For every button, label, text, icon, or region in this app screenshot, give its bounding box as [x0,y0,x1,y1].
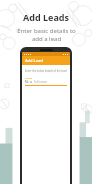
staticText: Enter the below details of the lead [25,69,67,73]
staticText: Full name [34,80,47,84]
staticText: Add Lead [25,58,43,63]
staticText: Add Leads [23,11,69,23]
staticText: Name [25,76,32,79]
button[interactable]: Add Lead [22,56,70,65]
staticText: Enter basic details to add a lead [17,27,76,43]
button[interactable]: Mr. [25,80,67,84]
staticText: Mr. [25,80,29,84]
